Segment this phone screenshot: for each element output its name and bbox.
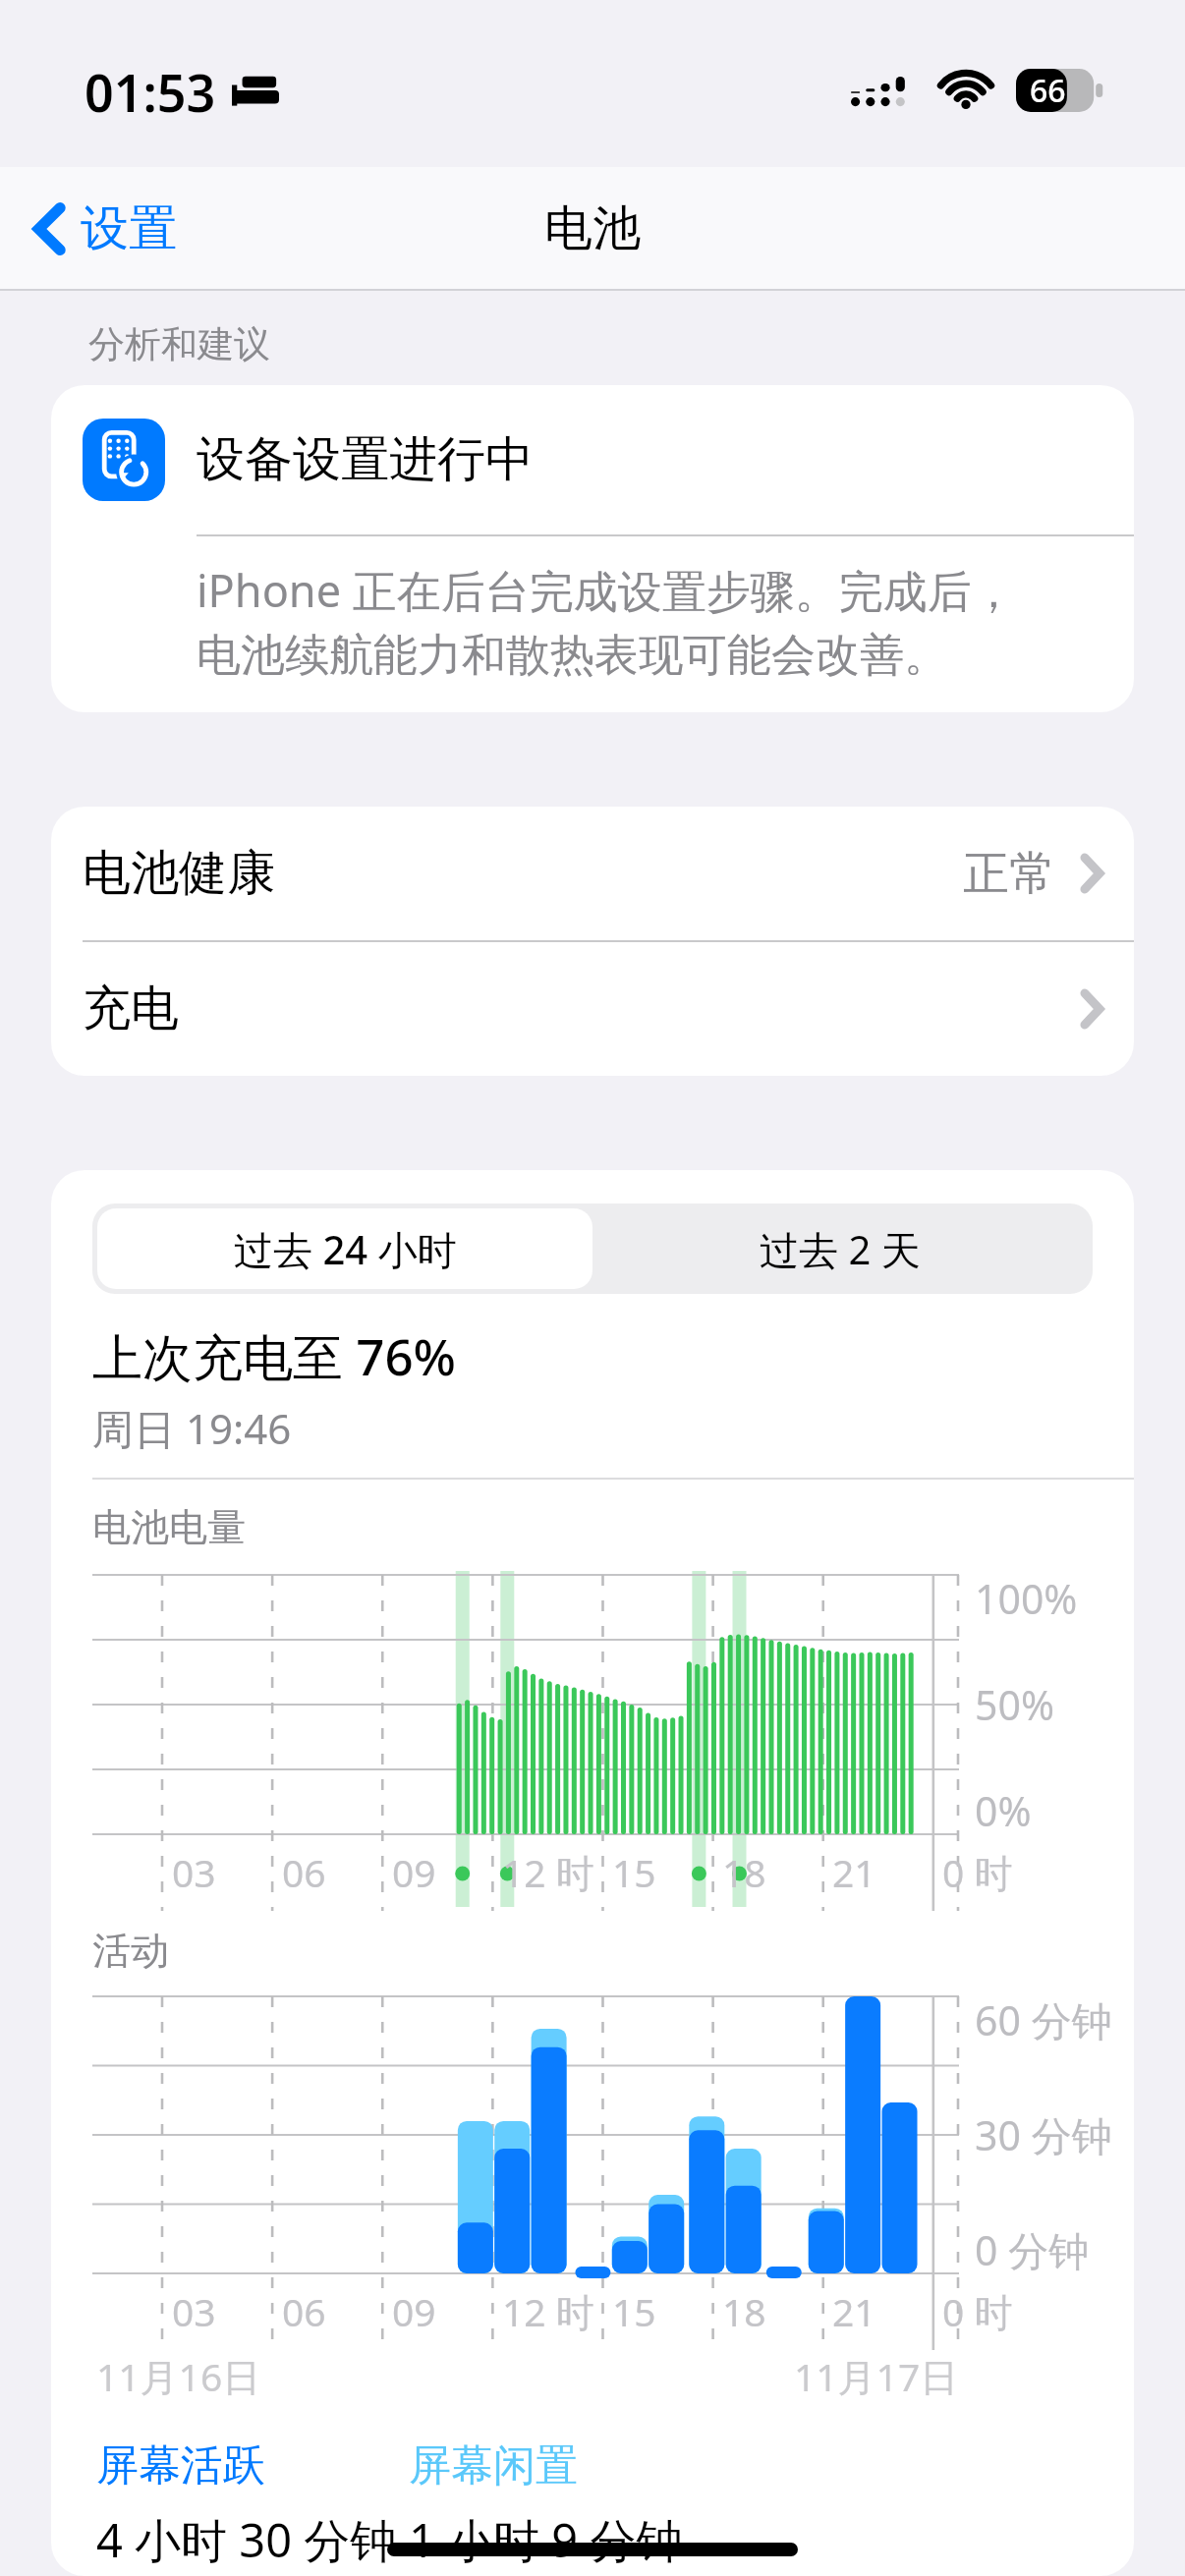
staticText: 03 <box>172 2285 216 2337</box>
staticText: 上次充电至 76% <box>92 1321 457 1390</box>
staticText: 06 <box>282 2285 326 2337</box>
staticText: 0 分钟 <box>975 2222 1090 2277</box>
staticText: 电池健康 <box>83 843 275 904</box>
other: 前往 <box>1081 854 1102 893</box>
button[interactable]: 设备设置进行中 <box>51 385 1134 712</box>
staticText: 分析和建议 <box>88 321 270 367</box>
staticText: 18 <box>722 1846 766 1898</box>
staticText: 03 <box>172 1846 216 1898</box>
staticText: 18 <box>722 2285 766 2337</box>
staticText: 11月16日 <box>96 2350 261 2402</box>
button[interactable]: 设置 <box>26 189 185 269</box>
staticText: 66 <box>1030 69 1066 112</box>
staticText: 30 分钟 <box>975 2107 1112 2162</box>
staticText: 0 时 <box>942 1846 1013 1898</box>
staticText: 屏幕活跃 <box>96 2439 265 2492</box>
staticText: 设备设置进行中 <box>197 429 534 490</box>
staticText: 100% <box>975 1571 1078 1626</box>
staticText: iPhone 正在后台完成设置步骤。完成后， 电池续航能力和散热表现可能会改善。 <box>197 560 1016 683</box>
staticText: 1 小时 9 分钟 <box>409 2508 683 2571</box>
staticText: 活动 <box>92 1927 169 1975</box>
button[interactable]: 电池健康 <box>51 807 1134 940</box>
staticText: 设置 <box>81 198 177 259</box>
staticText: 充电 <box>83 979 179 1039</box>
staticText: 50% <box>975 1677 1054 1732</box>
staticText: 0% <box>975 1783 1032 1838</box>
staticText: 0 时 <box>942 2285 1013 2337</box>
staticText: 11月17日 <box>794 2350 959 2402</box>
staticText: 15 <box>612 1846 656 1898</box>
staticText: 屏幕闲置 <box>409 2439 578 2492</box>
staticText: 电池 <box>544 198 641 259</box>
staticText: 09 <box>392 1846 436 1898</box>
button[interactable]: 过去 2 天 <box>592 1208 1088 1289</box>
staticText: 周日 19:46 <box>92 1400 292 1456</box>
staticText: 4 小时 30 分钟 <box>96 2508 397 2571</box>
staticText: 21 <box>832 2285 876 2337</box>
staticText: 12 时 <box>502 1846 594 1898</box>
staticText: 01:53 <box>85 57 216 127</box>
staticText: 21 <box>832 1846 876 1898</box>
staticText: 过去 2 天 <box>760 1222 921 1276</box>
staticText: 电池电量 <box>92 1503 246 1551</box>
other: 前往 <box>1081 989 1102 1029</box>
button[interactable]: 充电 <box>51 942 1134 1076</box>
staticText: 12 时 <box>502 2285 594 2337</box>
staticText: 正常 <box>963 845 1055 903</box>
staticText: 60 分钟 <box>975 1992 1112 2047</box>
staticText: 过去 24 小时 <box>234 1222 457 1276</box>
staticText: 09 <box>392 2285 436 2337</box>
staticText: 15 <box>612 2285 656 2337</box>
staticText: 06 <box>282 1846 326 1898</box>
button[interactable]: 过去 24 小时 <box>97 1208 592 1289</box>
